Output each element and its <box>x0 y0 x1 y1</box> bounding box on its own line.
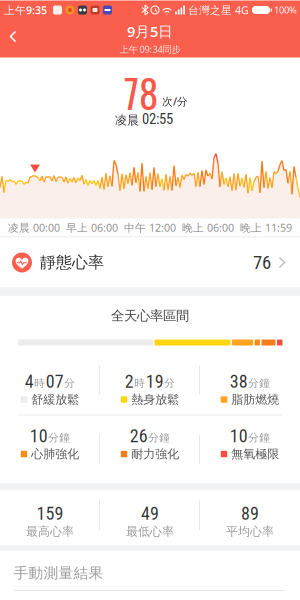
button[interactable]: 返回 <box>0 26 23 50</box>
staticText: 19 <box>146 371 164 392</box>
staticText: 10 <box>30 426 48 447</box>
staticText: 2 <box>125 371 134 392</box>
staticText: 舒緩放鬆 <box>31 392 79 407</box>
staticText: 早上 06:00 <box>66 220 118 235</box>
staticText: 全天心率區間 <box>111 307 189 324</box>
staticText: 100% <box>274 4 297 16</box>
staticText: 上午9:35 <box>4 3 47 17</box>
staticText: 時 <box>134 377 145 390</box>
staticText: 晚上 11:59 <box>240 220 292 235</box>
staticText: 平均心率 <box>226 524 274 539</box>
staticText: 無氧極限 <box>231 447 279 461</box>
staticText: 最低心率 <box>126 524 174 539</box>
button[interactable]: 靜態心率 <box>0 237 300 287</box>
staticText: 時 <box>34 377 45 390</box>
staticText: 49 <box>141 503 159 524</box>
staticText: 分鐘 <box>48 431 70 444</box>
staticText: 上午 09:34同步 <box>119 43 180 55</box>
staticText: 26 <box>130 426 148 447</box>
staticText: 晚上 06:00 <box>182 220 234 235</box>
staticText: 凌晨 00:00 <box>8 220 60 235</box>
staticText: 10 <box>230 426 248 447</box>
staticText: 159 <box>36 503 63 524</box>
staticText: 心肺強化 <box>31 447 79 461</box>
staticText: 89 <box>241 503 259 524</box>
staticText: 分 <box>64 377 75 390</box>
staticText: 手動測量結果 <box>13 564 103 582</box>
staticText: 4 <box>25 371 34 392</box>
staticText: 靜態心率 <box>40 253 104 272</box>
staticText: 分 <box>164 377 175 390</box>
staticText: 次/分 <box>162 94 188 108</box>
staticText: 分鐘 <box>248 377 270 390</box>
staticText: 熱身放鬆 <box>131 392 179 407</box>
staticText: 凌晨 <box>115 113 139 128</box>
staticText: 中午 12:00 <box>124 220 176 235</box>
staticText: 07 <box>46 371 64 392</box>
staticText: 台灣之星 4G <box>188 3 249 17</box>
staticText: 76 <box>253 252 271 273</box>
staticText: 02:55 <box>142 110 173 128</box>
staticText: 最高心率 <box>26 524 74 539</box>
staticText: 分鐘 <box>148 431 170 444</box>
staticText: 78 <box>124 64 158 121</box>
staticText: 38 <box>230 371 248 392</box>
staticText: 脂肪燃燒 <box>231 392 279 407</box>
staticText: 分鐘 <box>248 431 270 444</box>
staticText: 耐力強化 <box>131 447 179 461</box>
staticText: 9月5日 <box>127 22 173 41</box>
